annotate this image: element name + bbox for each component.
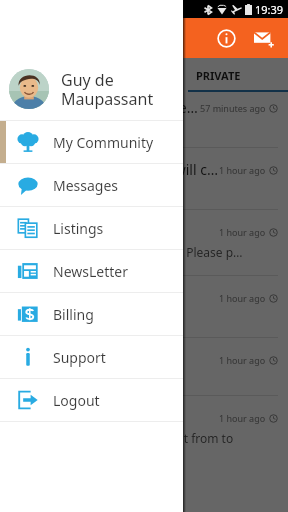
staticText: We can find the best we get but from xyxy=(10,98,200,117)
button[interactable]: Our… xyxy=(0,344,288,402)
button[interactable]: Billing xyxy=(0,293,183,335)
staticText: 1 hour ago xyxy=(219,226,266,238)
staticText: We can find the best we get but from to … xyxy=(10,430,278,458)
button[interactable]: Announcement. xyxy=(0,216,288,282)
button[interactable]: Listings xyxy=(0,207,183,249)
button[interactable]: RSVP xyxy=(50,312,140,336)
staticText: 1 hour ago xyxy=(219,412,266,424)
staticText: RSVP xyxy=(81,316,110,332)
button[interactable]: Messages xyxy=(0,164,183,206)
button[interactable]: Logout xyxy=(0,379,183,421)
staticText: Billing xyxy=(53,305,94,324)
staticText: Listings xyxy=(53,219,104,238)
staticText: 1 hour ago xyxy=(219,164,266,176)
staticText: PRIVATE xyxy=(196,68,241,83)
button[interactable]: Support xyxy=(0,336,183,378)
staticText: more kindly… xyxy=(10,182,86,198)
staticText: Support xyxy=(53,348,106,367)
staticText: Announcement. xyxy=(10,222,116,241)
staticText: Messages xyxy=(53,176,119,195)
staticText: to celebrate the… xyxy=(10,120,109,136)
staticText: Logout xyxy=(53,391,100,410)
staticText: month's comic con with family. Please p… xyxy=(10,244,243,260)
staticText: 1 hour ago xyxy=(219,354,266,366)
button[interactable]: NewsLetter xyxy=(0,250,183,292)
staticText: 57 minutes ago xyxy=(200,102,266,114)
button[interactable]: Discount on event which will cost xyxy=(0,154,288,216)
staticText: Discount on event which will cost xyxy=(10,160,219,179)
staticText: NewsLetter xyxy=(53,262,128,281)
button[interactable]: Guy de Maupassant xyxy=(0,58,183,120)
staticText: e… xyxy=(10,408,29,427)
button[interactable]: Join in… xyxy=(0,282,288,344)
staticText: My Community xyxy=(53,133,154,152)
button[interactable]: We can find the best we get but from xyxy=(0,92,288,154)
staticText: Guy de Maupassant xyxy=(61,69,154,110)
staticText: Our… xyxy=(10,350,45,369)
button[interactable]: e… xyxy=(0,402,288,464)
button[interactable]: Information xyxy=(210,22,242,54)
button[interactable]: My Community xyxy=(0,121,183,163)
staticText: 1 hour ago xyxy=(219,292,266,304)
staticText: 19:39 xyxy=(255,2,284,17)
staticText: Join in… xyxy=(10,288,62,307)
button[interactable]: New message xyxy=(248,22,280,54)
